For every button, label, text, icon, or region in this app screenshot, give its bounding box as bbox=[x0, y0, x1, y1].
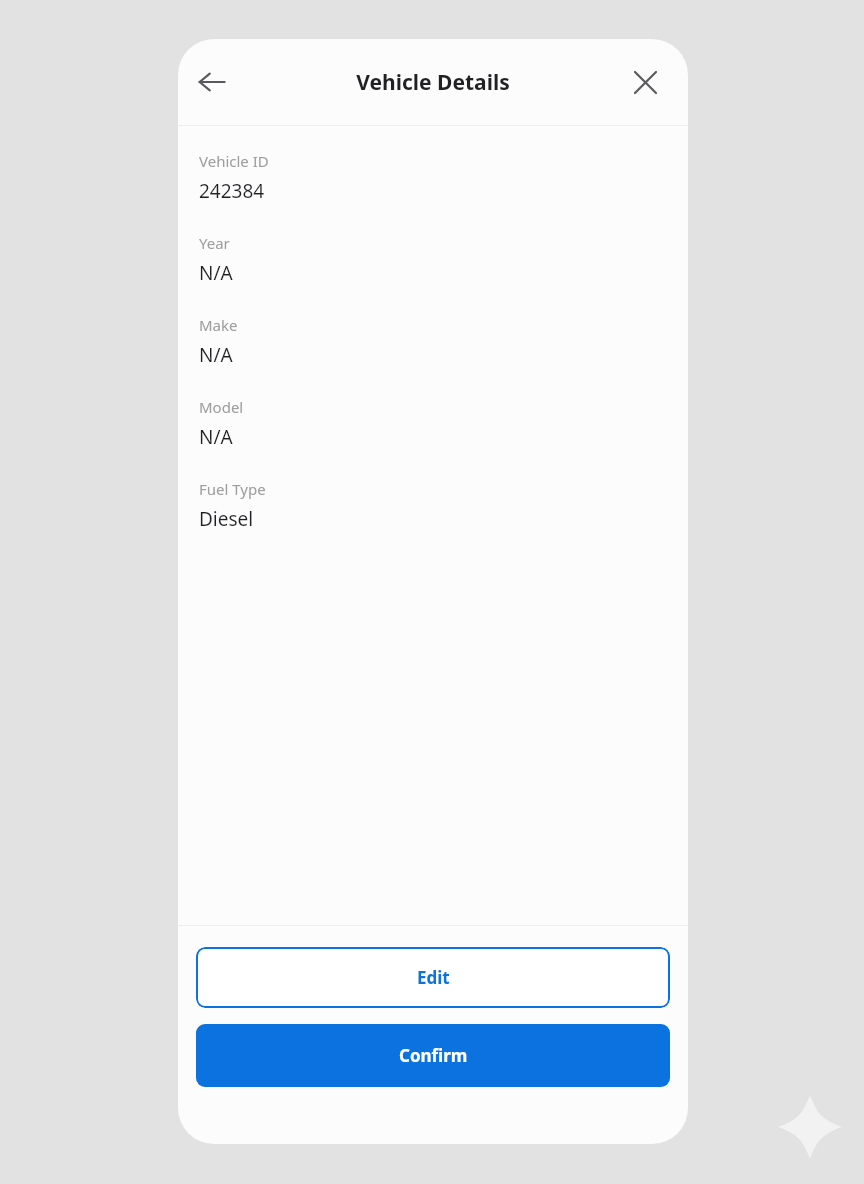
staticText: Fuel Type bbox=[199, 479, 266, 499]
staticText: Confirm bbox=[399, 1044, 468, 1067]
staticText: Edit bbox=[417, 966, 450, 989]
staticText: Make bbox=[199, 315, 238, 335]
staticText: N/A bbox=[199, 424, 233, 450]
button[interactable]: Close bbox=[615, 52, 675, 112]
staticText: Vehicle ID bbox=[199, 151, 269, 171]
button[interactable]: Confirm bbox=[196, 1024, 670, 1087]
staticText: Vehicle Details bbox=[356, 68, 510, 97]
staticText: Year bbox=[199, 233, 230, 253]
button[interactable]: Edit bbox=[196, 947, 670, 1008]
staticText: Model bbox=[199, 397, 244, 417]
button[interactable]: Back bbox=[182, 52, 242, 112]
staticText: N/A bbox=[199, 342, 233, 368]
staticText: Diesel bbox=[199, 506, 254, 532]
staticText: N/A bbox=[199, 260, 233, 286]
staticText: 242384 bbox=[199, 178, 265, 204]
